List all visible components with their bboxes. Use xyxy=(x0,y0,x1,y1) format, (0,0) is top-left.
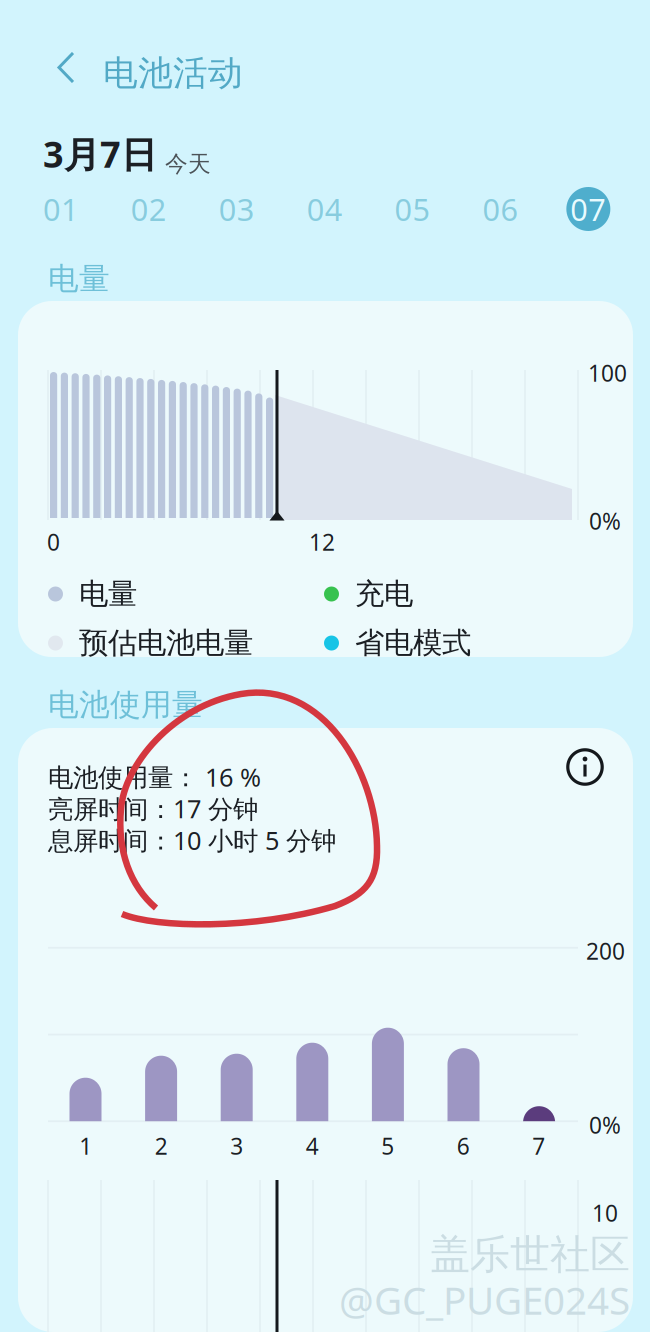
staticText: 04 xyxy=(307,189,343,229)
button[interactable]: 07 xyxy=(544,181,632,237)
staticText: 03 xyxy=(219,189,255,229)
staticText: 电量 xyxy=(79,576,137,612)
staticText: 电量 xyxy=(48,260,110,298)
staticText: 7 xyxy=(532,1131,545,1161)
staticText: 息屏时间：10 小时 5 分钟 xyxy=(48,823,336,857)
staticText: 0% xyxy=(589,506,621,536)
staticText: 1 xyxy=(79,1131,92,1161)
staticText: 05 xyxy=(395,189,431,229)
button[interactable]: 02 xyxy=(105,181,193,237)
staticText: 今天 xyxy=(165,150,211,178)
button[interactable]: 06 xyxy=(456,181,544,237)
staticText: 2 xyxy=(155,1131,168,1161)
staticText: 3月7日 xyxy=(43,130,157,178)
button[interactable]: Back xyxy=(44,46,88,90)
staticText: 省电模式 xyxy=(355,625,471,661)
staticText: 3 xyxy=(230,1131,243,1161)
staticText: 充电 xyxy=(355,576,413,612)
staticText: 电池使用量： 16 % xyxy=(48,760,261,794)
button[interactable]: 03 xyxy=(193,181,281,237)
staticText: 200 xyxy=(586,936,625,966)
staticText: 亮屏时间：17 分钟 xyxy=(48,792,258,825)
button[interactable]: 04 xyxy=(281,181,369,237)
staticText: 盖乐世社区 xyxy=(430,1230,630,1279)
staticText: 预估电池电量 xyxy=(79,625,253,661)
staticText: 02 xyxy=(131,189,167,229)
staticText: 01 xyxy=(43,189,79,229)
staticText: 6 xyxy=(457,1131,470,1161)
button[interactable]: 01 xyxy=(17,181,105,237)
staticText: 10 xyxy=(592,1198,618,1228)
staticText: 5 xyxy=(381,1131,394,1161)
staticText: 06 xyxy=(482,189,518,229)
button[interactable]: 05 xyxy=(369,181,456,237)
staticText: 07 xyxy=(570,189,606,229)
button[interactable]: Info xyxy=(566,748,604,786)
staticText: 0 xyxy=(47,527,60,557)
staticText: 4 xyxy=(306,1131,319,1161)
staticText: 12 xyxy=(309,527,335,557)
staticText: 电池使用量 xyxy=(48,686,203,724)
staticText: 100 xyxy=(588,358,627,388)
staticText: 0% xyxy=(589,1110,621,1140)
staticText: @GC_PUGE024S xyxy=(339,1274,630,1325)
staticText: 电池活动 xyxy=(103,52,243,95)
